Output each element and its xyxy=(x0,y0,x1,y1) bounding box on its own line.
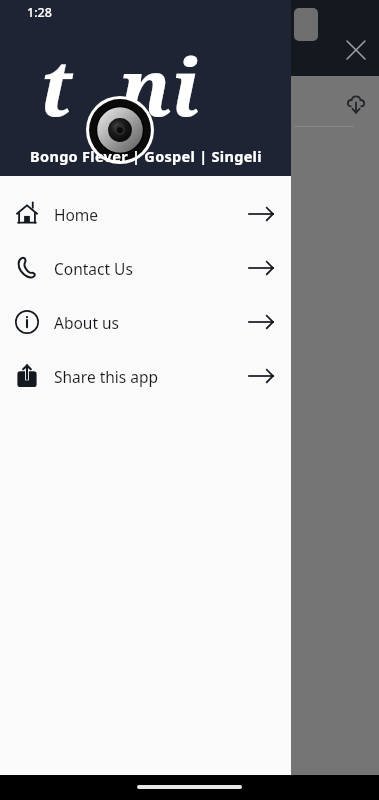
staticText: ni xyxy=(119,33,200,139)
staticText: 1:28 xyxy=(27,4,52,21)
button[interactable]: Share this app xyxy=(0,349,291,403)
staticText: t xyxy=(40,33,73,139)
staticText: Home xyxy=(54,204,231,225)
button[interactable]: Close xyxy=(340,34,372,66)
button[interactable]: About us xyxy=(0,295,291,349)
button[interactable]: Home xyxy=(0,187,291,241)
staticText: Bongo Flever | Gospel | Singeli xyxy=(30,146,262,166)
button[interactable]: Contact Us xyxy=(0,241,291,295)
staticText: About us xyxy=(54,312,231,333)
staticText: Contact Us xyxy=(54,258,231,279)
staticText: Share this app xyxy=(54,366,231,387)
